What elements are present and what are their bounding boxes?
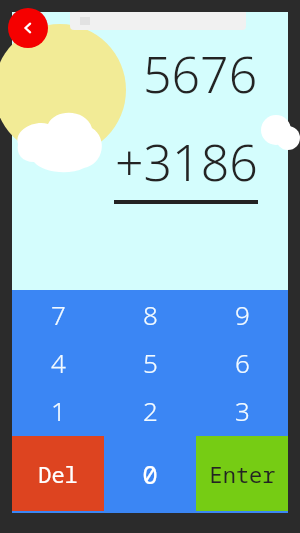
staticText: 8: [143, 297, 158, 332]
staticText: Enter: [209, 459, 276, 489]
button[interactable]: Del: [12, 436, 104, 511]
staticText: 1: [51, 393, 66, 428]
button[interactable]: 0: [104, 434, 196, 513]
staticText: 5: [143, 345, 158, 380]
staticText: 3: [235, 393, 250, 428]
button[interactable]: 7: [12, 290, 104, 338]
button[interactable]: Enter: [196, 436, 288, 511]
staticText: 7: [51, 297, 66, 332]
button[interactable]: 1: [12, 386, 104, 434]
staticText: 6: [235, 345, 250, 380]
button[interactable]: 3: [196, 386, 288, 434]
button[interactable]: 8: [104, 290, 196, 338]
staticText: +3186: [115, 128, 258, 196]
button[interactable]: 4: [12, 338, 104, 386]
staticText: 2: [143, 393, 158, 428]
button[interactable]: 6: [196, 338, 288, 386]
staticText: 9: [235, 297, 250, 332]
staticText: 4: [51, 345, 66, 380]
staticText: 5676: [143, 40, 258, 108]
button[interactable]: 5: [104, 338, 196, 386]
staticText: Del: [38, 459, 78, 489]
button[interactable]: Back: [8, 8, 48, 48]
button[interactable]: 9: [196, 290, 288, 338]
button[interactable]: 2: [104, 386, 196, 434]
staticText: 0: [142, 456, 158, 491]
